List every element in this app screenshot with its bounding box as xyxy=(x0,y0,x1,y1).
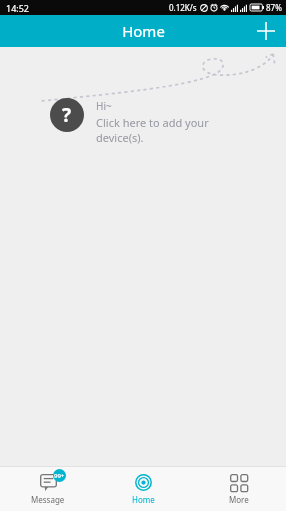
staticText: 14:52 xyxy=(6,2,30,14)
button[interactable]: More xyxy=(191,467,286,511)
button[interactable]: Add device xyxy=(246,15,286,47)
button[interactable]: Home xyxy=(96,467,191,511)
staticText: ? xyxy=(62,102,72,128)
staticText: Message xyxy=(31,494,65,505)
staticText: 99+ xyxy=(54,472,65,480)
staticText: Click here to add your device(s). xyxy=(96,115,209,145)
staticText: More xyxy=(229,494,249,505)
staticText: Home xyxy=(132,494,155,505)
staticText: 0.12K/s xyxy=(169,2,197,13)
button[interactable]: ? xyxy=(50,98,209,145)
staticText: 87% xyxy=(266,2,282,13)
staticText: Home xyxy=(122,21,165,41)
staticText: Hi~ xyxy=(96,99,112,113)
button[interactable]: 99+ xyxy=(0,467,96,511)
